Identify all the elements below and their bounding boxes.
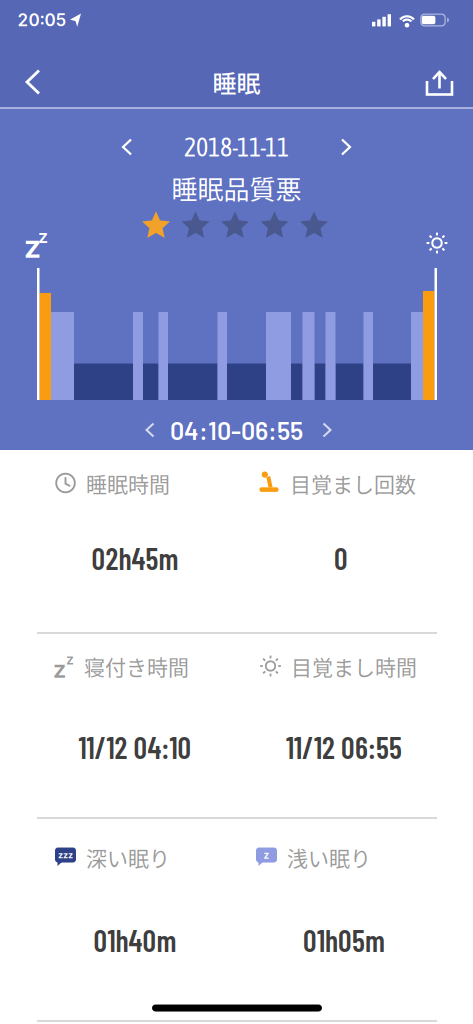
staticText: 睡眠時間 xyxy=(86,468,170,498)
staticText: z xyxy=(24,227,41,265)
button[interactable]: Next sleep segment xyxy=(312,415,342,445)
staticText: 目覚まし時間 xyxy=(291,651,417,681)
button[interactable]: Next day xyxy=(328,129,364,165)
staticText: 深い眠り xyxy=(86,842,170,872)
staticText: 目覚まし回数 xyxy=(290,468,416,498)
button[interactable]: Share xyxy=(417,61,461,105)
staticText: 2018-11-11 xyxy=(184,132,289,162)
staticText: 01h40m xyxy=(93,922,176,958)
staticText: 寝付き時間 xyxy=(84,651,189,681)
staticText: 20:05 xyxy=(17,10,66,30)
staticText: 浅い眠り xyxy=(287,842,371,872)
staticText: 11/12 06:55 xyxy=(286,729,402,765)
staticText: 0 xyxy=(334,540,348,576)
staticText: 睡眠品質悪 xyxy=(171,169,301,207)
staticText: z xyxy=(53,654,66,683)
button[interactable]: Back xyxy=(11,60,55,104)
staticText: z xyxy=(38,226,48,247)
staticText: 01h05m xyxy=(303,922,385,958)
staticText: 04:10-06:55 xyxy=(170,415,303,445)
staticText: z xyxy=(263,849,269,861)
button[interactable]: Previous day xyxy=(109,129,145,165)
staticText: 02h45m xyxy=(91,540,178,576)
staticText: z xyxy=(66,651,74,668)
button[interactable]: Previous sleep segment xyxy=(135,415,165,445)
staticText: zzz xyxy=(58,850,73,860)
staticText: 睡眠 xyxy=(212,65,260,99)
staticText: 11/12 04:10 xyxy=(78,729,191,765)
